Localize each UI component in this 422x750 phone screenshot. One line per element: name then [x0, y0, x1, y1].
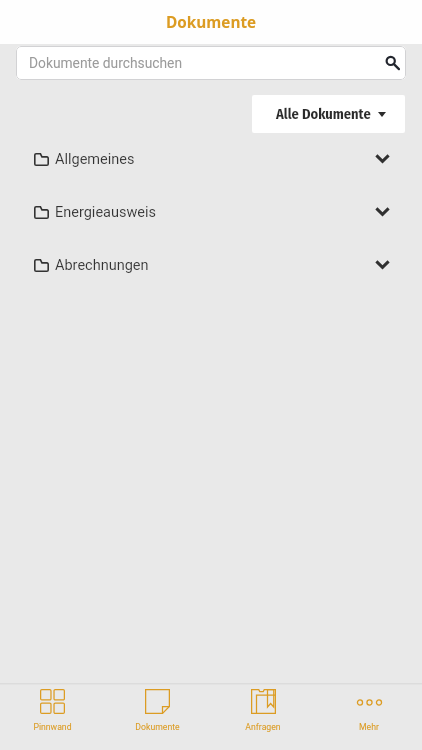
staticText: Mehr [359, 722, 379, 732]
button[interactable]: Abrechnungen [0, 239, 422, 292]
staticText: Dokumente [135, 722, 180, 732]
button[interactable]: Dokumente [105, 685, 210, 750]
button[interactable]: Dokumente durchsuchen [16, 46, 406, 80]
staticText: Allgemeines [55, 151, 135, 168]
staticText: Energieausweis [55, 204, 157, 221]
staticText: Pinnwand [33, 722, 72, 732]
staticText: Anfragen [245, 722, 281, 732]
staticText: Abrechnungen [55, 257, 149, 274]
button[interactable]: Pinnwand [0, 685, 105, 750]
button[interactable]: Energieausweis [0, 186, 422, 239]
button[interactable]: Anfragen [210, 685, 316, 750]
button[interactable]: Alle Dokumente [252, 95, 405, 133]
staticText: Alle Dokumente [276, 106, 371, 123]
staticText: Dokumente [166, 12, 257, 33]
button[interactable]: Allgemeines [0, 133, 422, 186]
button[interactable]: Mehr [316, 685, 422, 750]
staticText: Dokumente durchsuchen [29, 55, 384, 71]
